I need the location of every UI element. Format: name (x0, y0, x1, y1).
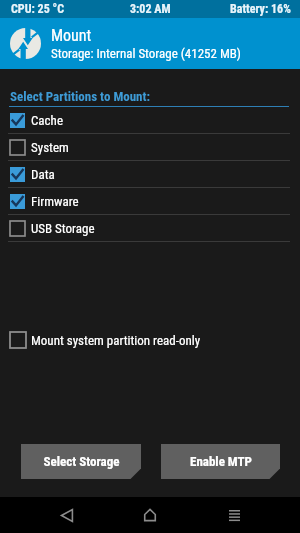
staticText: Select Storage (43, 454, 120, 469)
staticText: Enable MTP (190, 454, 252, 469)
staticText: Data (31, 167, 55, 182)
button[interactable]: System (0, 134, 300, 161)
button[interactable]: Firmware (0, 188, 300, 215)
button[interactable]: Back (47, 497, 87, 533)
staticText: Battery: 16% (230, 2, 291, 16)
staticText: Cache (31, 113, 63, 128)
staticText: Storage: Internal Storage (41252 MB) (51, 46, 242, 61)
staticText: System (31, 140, 69, 155)
button[interactable]: Recent apps (214, 497, 254, 533)
button[interactable]: Select Storage (21, 444, 141, 479)
button[interactable]: USB Storage (0, 215, 300, 242)
staticText: CPU: 25 °C (11, 2, 65, 16)
button[interactable]: Home (130, 497, 170, 533)
staticText: Firmware (31, 194, 79, 209)
staticText: Select Partitions to Mount: (10, 89, 151, 104)
staticText: 3:02 AM (130, 2, 171, 16)
button[interactable]: Mount system partition read-only (0, 332, 300, 348)
staticText: USB Storage (31, 221, 95, 236)
button[interactable]: Data (0, 161, 300, 188)
button[interactable]: Cache (0, 107, 300, 134)
button[interactable]: Enable MTP (161, 444, 280, 479)
staticText: Mount system partition read-only (31, 333, 201, 348)
staticText: Mount (51, 26, 92, 45)
